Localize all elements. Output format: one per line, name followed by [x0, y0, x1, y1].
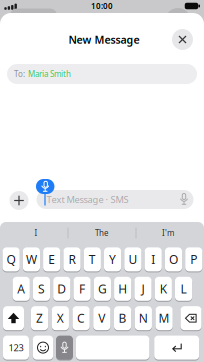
- button[interactable]: Text Message: [36, 190, 193, 209]
- staticText: New Message: [68, 32, 139, 47]
- button[interactable]: R: [63, 247, 81, 272]
- staticText: N: [139, 310, 148, 326]
- button[interactable]: Add attachment: [9, 191, 28, 210]
- staticText: Maria Smith: [28, 69, 71, 79]
- button[interactable]: Q: [2, 247, 20, 272]
- button[interactable]: M: [155, 306, 173, 331]
- staticText: K: [160, 281, 167, 297]
- staticText: I: [34, 228, 37, 238]
- staticText: Q: [7, 251, 16, 267]
- button[interactable]: Dictate: [56, 336, 73, 361]
- staticText: E: [48, 251, 55, 267]
- staticText: A: [17, 281, 25, 297]
- staticText: S: [38, 281, 45, 297]
- button[interactable]: K: [155, 277, 172, 302]
- staticText: D: [57, 281, 66, 297]
- button[interactable]: Close: [172, 29, 193, 50]
- button[interactable]: H: [114, 277, 131, 302]
- staticText: 10:00: [91, 1, 113, 11]
- staticText: I: [151, 251, 155, 267]
- button[interactable]: L: [175, 277, 192, 302]
- staticText: B: [119, 310, 127, 326]
- button[interactable]: To:: [7, 64, 197, 84]
- staticText: U: [128, 251, 137, 267]
- staticText: The: [95, 228, 109, 238]
- button[interactable]: T: [84, 247, 101, 272]
- button[interactable]: G: [94, 277, 111, 302]
- staticText: T: [89, 251, 96, 267]
- staticText: J: [141, 281, 144, 297]
- button[interactable]: P: [185, 247, 202, 272]
- staticText: W: [26, 251, 37, 267]
- staticText: H: [118, 281, 127, 297]
- button[interactable]: C: [72, 306, 90, 331]
- button[interactable]: E: [43, 247, 60, 272]
- staticText: F: [79, 281, 85, 297]
- button[interactable]: 123: [3, 336, 29, 361]
- button[interactable]: I: [5, 223, 67, 243]
- button[interactable]: Emoji: [33, 336, 53, 361]
- button[interactable]: Y: [104, 247, 121, 272]
- button[interactable]: N: [135, 306, 152, 331]
- staticText: I'm: [162, 228, 174, 238]
- button[interactable]: U: [124, 247, 141, 272]
- button[interactable]: X: [52, 306, 69, 331]
- button[interactable]: Shift: [3, 306, 24, 331]
- button[interactable]: O: [165, 247, 182, 272]
- button[interactable]: A: [13, 277, 30, 302]
- button[interactable]: B: [114, 306, 131, 331]
- staticText: To:: [14, 69, 25, 79]
- button[interactable]: Delete: [180, 306, 201, 331]
- staticText: R: [68, 251, 75, 267]
- staticText: V: [98, 310, 105, 326]
- staticText: M: [159, 310, 170, 326]
- button[interactable]: V: [93, 306, 110, 331]
- button[interactable]: I'm: [137, 223, 199, 243]
- staticText: Z: [36, 310, 43, 326]
- button[interactable]: F: [73, 277, 91, 302]
- button[interactable]: I: [145, 247, 162, 272]
- staticText: O: [169, 251, 178, 267]
- staticText: Y: [109, 251, 116, 267]
- button[interactable]: The: [71, 223, 133, 243]
- button[interactable]: Return: [154, 336, 199, 361]
- button[interactable]: W: [23, 247, 40, 272]
- staticText: P: [190, 251, 197, 267]
- staticText: L: [181, 281, 187, 297]
- staticText: Text Message · SMS: [46, 193, 128, 206]
- button[interactable]: Space: [76, 336, 149, 361]
- staticText: C: [77, 310, 85, 326]
- staticText: X: [57, 310, 64, 326]
- button[interactable]: J: [134, 277, 152, 302]
- staticText: G: [98, 281, 107, 297]
- button[interactable]: D: [53, 277, 70, 302]
- button[interactable]: Dictation: [36, 179, 54, 194]
- button[interactable]: Z: [31, 306, 48, 331]
- staticText: 123: [8, 341, 23, 354]
- button[interactable]: S: [33, 277, 50, 302]
